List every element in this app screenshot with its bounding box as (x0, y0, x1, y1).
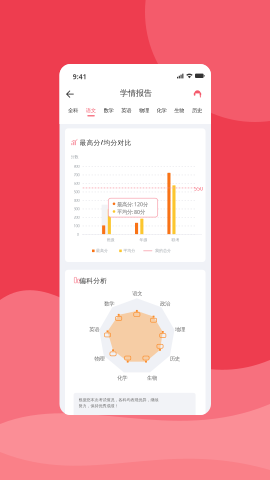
staticText: 联考 (171, 237, 179, 242)
staticText: 500 (74, 189, 80, 194)
button[interactable]: 语文 (82, 104, 100, 122)
staticText: 100 (74, 223, 80, 228)
staticText: 学情报告 (120, 88, 152, 98)
staticText: 9:41 (73, 72, 87, 81)
staticText: 生物 (174, 107, 184, 114)
staticText: 历史 (170, 356, 180, 362)
staticText: 平均分 (123, 248, 135, 253)
staticText: 化学 (157, 107, 167, 114)
staticText: 我的总分 (155, 248, 171, 253)
staticText: 800 (74, 164, 80, 169)
staticText: 偏科分析 (79, 277, 107, 285)
staticText: 物理 (94, 356, 104, 362)
staticText: 数学 (103, 107, 113, 114)
staticText: 最高分: 120分 (117, 201, 148, 208)
button[interactable]: 返回 (59, 84, 81, 104)
staticText: 化学 (117, 375, 127, 381)
staticText: 0 (77, 232, 79, 237)
staticText: 努力，保持优秀成绩！ (79, 403, 119, 408)
staticText: 年级 (139, 237, 147, 242)
staticText: 班级 (107, 237, 115, 242)
staticText: 分数 (70, 154, 78, 159)
staticText: 数学 (104, 300, 114, 307)
button[interactable]: 全科 (64, 104, 82, 122)
button[interactable]: 物理 (135, 104, 153, 122)
staticText: 物理 (139, 107, 149, 114)
staticText: 200 (74, 215, 80, 220)
staticText: 700 (74, 172, 80, 177)
staticText: 300 (74, 206, 80, 211)
staticText: 地理 (175, 326, 185, 333)
button[interactable]: 化学 (153, 104, 171, 122)
button[interactable]: 在线客服 (189, 84, 207, 104)
staticText: 400 (74, 198, 80, 203)
staticText: 语文 (132, 290, 142, 297)
staticText: 600 (74, 181, 80, 186)
staticText: 政治 (160, 300, 170, 307)
staticText: 根据您本次考试情况，各科均表现优异，继续 (79, 397, 159, 402)
staticText: 英语 (89, 326, 99, 333)
button[interactable]: 历史 (188, 104, 206, 122)
staticText: 全科 (68, 107, 78, 114)
staticText: 550 (194, 185, 203, 192)
staticText: 平均分: 80分 (117, 208, 145, 215)
button[interactable]: 生物 (171, 104, 188, 122)
staticText: 语文 (86, 107, 96, 114)
staticText: 生物 (147, 375, 157, 381)
staticText: 历史 (192, 107, 202, 114)
staticText: 最高分/均分对比 (79, 138, 131, 147)
button[interactable]: 数学 (100, 104, 118, 122)
staticText: 英语 (121, 107, 131, 114)
staticText: 最高分 (96, 248, 108, 253)
button[interactable]: 英语 (118, 104, 135, 122)
